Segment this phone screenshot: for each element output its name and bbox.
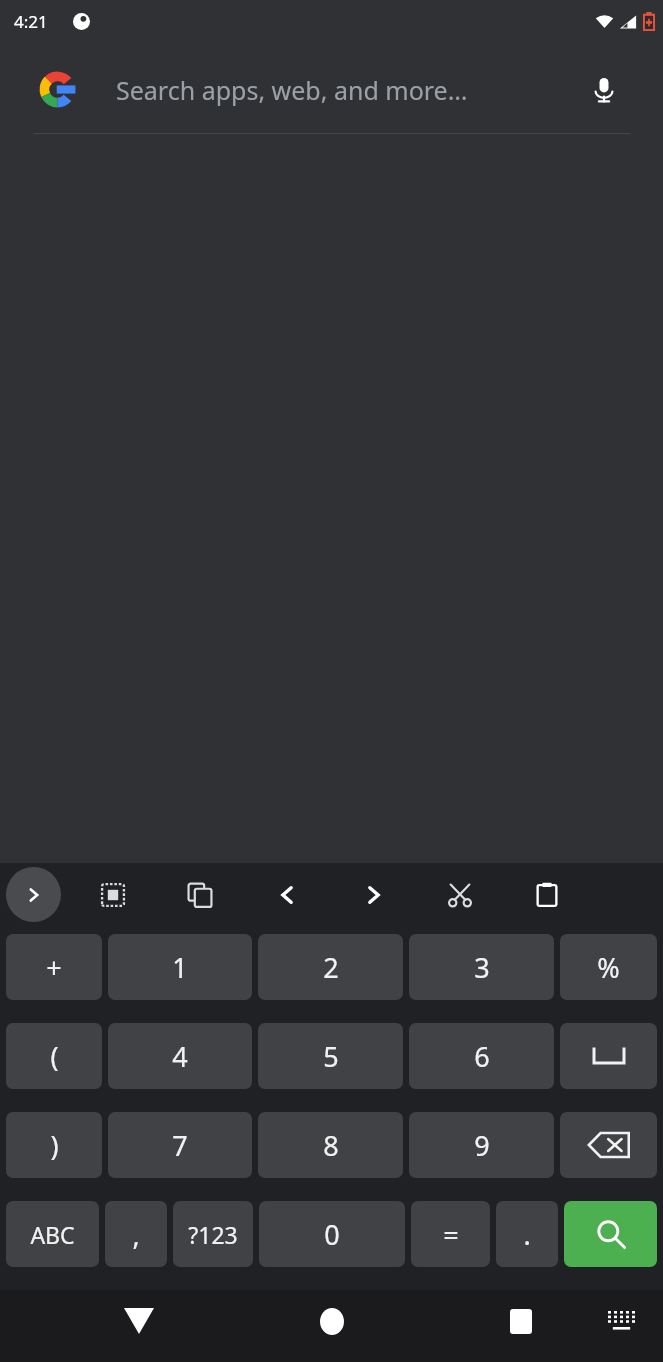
button[interactable]: 4: [108, 1023, 252, 1089]
button[interactable]: Move cursor right: [348, 869, 400, 921]
staticText: =: [443, 1216, 459, 1253]
button[interactable]: Space: [560, 1023, 657, 1089]
staticText: Search apps, web, and more…: [116, 73, 468, 107]
button[interactable]: Cut: [434, 869, 486, 921]
button[interactable]: 5: [258, 1023, 403, 1089]
button[interactable]: Search: [564, 1201, 657, 1267]
button[interactable]: =: [411, 1201, 490, 1267]
staticText: (: [50, 1038, 59, 1075]
staticText: %: [597, 949, 620, 986]
staticText: 7: [172, 1127, 188, 1164]
button[interactable]: ?123: [173, 1201, 253, 1267]
button[interactable]: 3: [409, 934, 554, 1000]
button[interactable]: Switch keyboard: [597, 1297, 645, 1345]
button[interactable]: 6: [409, 1023, 554, 1089]
button[interactable]: .: [496, 1201, 558, 1267]
button[interactable]: Recent apps: [490, 1290, 552, 1352]
staticText: 3: [474, 949, 490, 986]
button[interactable]: %: [560, 934, 657, 1000]
button[interactable]: Backspace: [560, 1112, 657, 1178]
button[interactable]: 9: [409, 1112, 554, 1178]
button[interactable]: Voice search: [581, 67, 627, 113]
staticText: +: [46, 949, 62, 986]
button[interactable]: +: [6, 934, 102, 1000]
button[interactable]: Copy: [174, 869, 226, 921]
button[interactable]: ABC: [6, 1201, 99, 1267]
button[interactable]: 2: [258, 934, 403, 1000]
button[interactable]: Paste: [521, 869, 573, 921]
button[interactable]: 7: [108, 1112, 252, 1178]
button[interactable]: Move cursor left: [261, 869, 313, 921]
staticText: 0: [324, 1216, 340, 1253]
staticText: .: [523, 1216, 531, 1253]
button[interactable]: ,: [105, 1201, 167, 1267]
staticText: 1: [172, 949, 188, 986]
button[interactable]: Back: [108, 1290, 170, 1352]
button[interactable]: Expand toolbar: [6, 867, 61, 922]
button[interactable]: (: [6, 1023, 102, 1089]
staticText: 4:21: [14, 10, 48, 33]
button[interactable]: 0: [259, 1201, 405, 1267]
button[interactable]: Search apps, web, and more…: [0, 46, 663, 134]
staticText: 5: [323, 1038, 339, 1075]
button[interactable]: 8: [258, 1112, 403, 1178]
staticText: 9: [474, 1127, 490, 1164]
staticText: 8: [323, 1127, 339, 1164]
button[interactable]: ): [6, 1112, 102, 1178]
staticText: ,: [132, 1216, 140, 1253]
button[interactable]: Home: [301, 1290, 363, 1352]
staticText: 2: [323, 949, 339, 986]
staticText: 4: [172, 1038, 188, 1075]
staticText: ): [50, 1127, 59, 1164]
staticText: ?123: [188, 1219, 238, 1250]
button[interactable]: 1: [108, 934, 252, 1000]
staticText: 6: [474, 1038, 490, 1075]
button[interactable]: Select all: [87, 869, 139, 921]
staticText: ABC: [30, 1219, 75, 1250]
